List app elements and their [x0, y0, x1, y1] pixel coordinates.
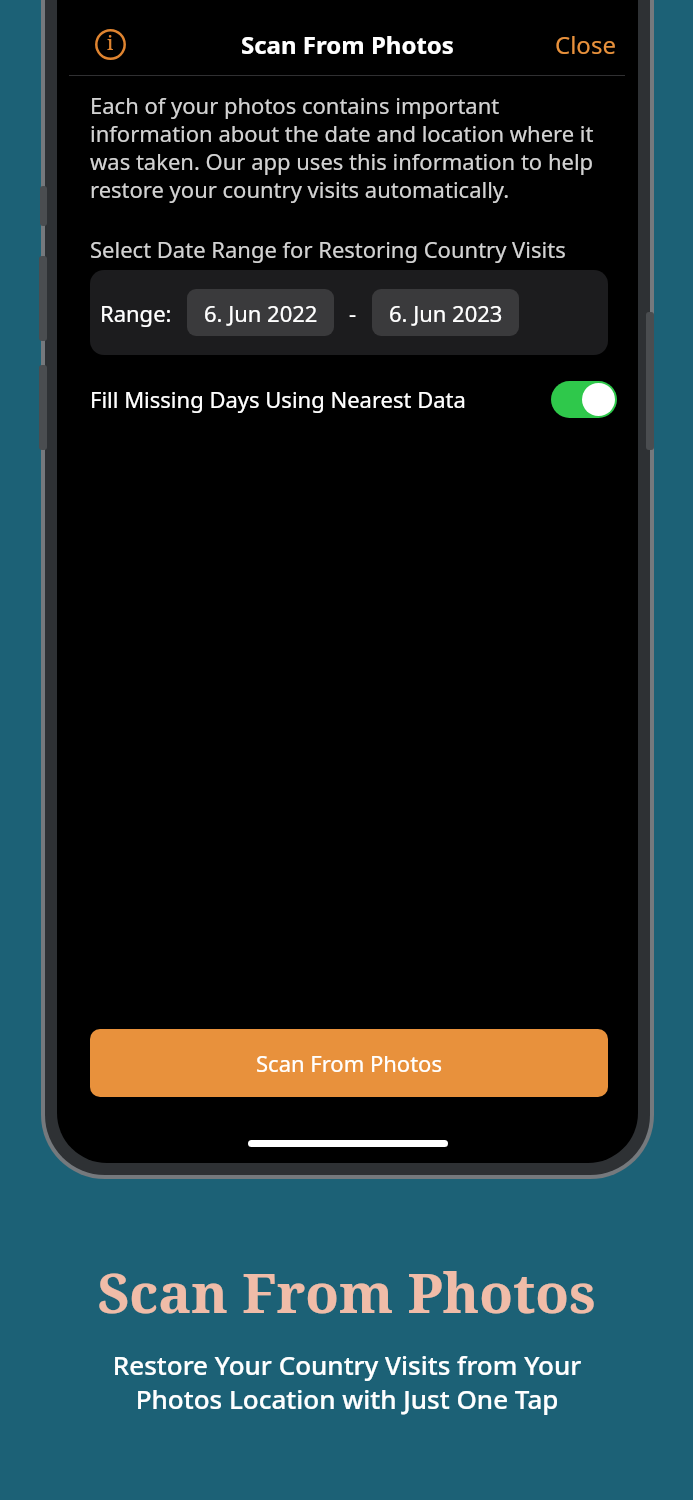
staticText: Select Date Range for Restoring Country …	[90, 234, 566, 264]
staticText: 6. Jun 2022	[204, 298, 318, 328]
button[interactable]: 6. Jun 2023	[372, 289, 519, 336]
staticText: Fill Missing Days Using Nearest Data	[90, 384, 466, 414]
button[interactable]: Fill Missing Days Using Nearest Data	[57, 370, 638, 428]
staticText: -	[349, 298, 357, 328]
staticText: Range:	[100, 298, 172, 328]
staticText: Each of your photos contains important i…	[90, 90, 608, 204]
button[interactable]: Information	[80, 14, 140, 74]
staticText: Close	[555, 28, 616, 61]
staticText: Scan From Photos	[256, 1048, 442, 1078]
button[interactable]: Scan From Photos	[90, 1029, 608, 1097]
staticText: Restore Your Country Visits from Your Ph…	[73, 1347, 621, 1416]
staticText: Scan From Photos	[97, 1254, 596, 1329]
staticText: 6. Jun 2023	[389, 298, 503, 328]
staticText: i	[107, 30, 114, 56]
button[interactable]: 6. Jun 2022	[187, 289, 334, 336]
button[interactable]: Close	[541, 18, 630, 71]
staticText: Scan From Photos	[241, 28, 454, 61]
